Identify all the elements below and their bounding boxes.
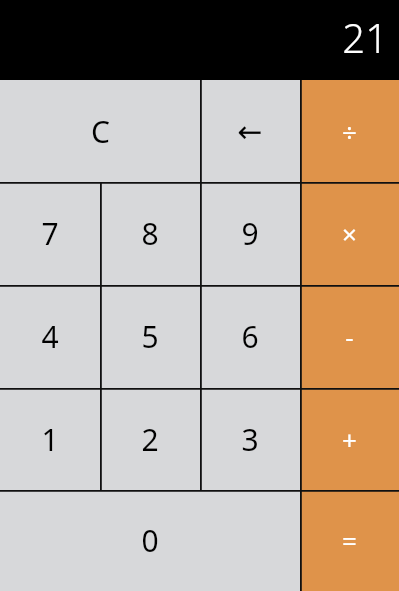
button[interactable]: 6 (200, 285, 300, 388)
button[interactable]: 2 (100, 388, 200, 490)
button[interactable]: 3 (200, 388, 300, 490)
staticText: = (342, 523, 357, 558)
staticText: ÷ (342, 114, 357, 149)
staticText: 9 (241, 213, 259, 254)
staticText: 6 (241, 316, 259, 357)
staticText: 0 (141, 520, 159, 561)
staticText: C (91, 111, 110, 152)
staticText: 2 (141, 419, 159, 460)
staticText: 8 (141, 213, 159, 254)
button[interactable]: 9 (200, 182, 300, 285)
button[interactable]: Minus (300, 285, 399, 388)
button[interactable]: Equals (300, 490, 399, 591)
staticText: 5 (141, 316, 159, 357)
staticText: 21 (342, 10, 388, 64)
button[interactable]: Divide (300, 80, 399, 182)
staticText: ← (237, 114, 263, 149)
staticText: - (345, 319, 354, 354)
button[interactable]: 4 (0, 285, 100, 388)
button[interactable]: Plus (300, 388, 399, 490)
staticText: 4 (41, 316, 59, 357)
staticText: 1 (41, 419, 59, 460)
staticText: × (342, 216, 357, 251)
button[interactable]: 0 (0, 490, 300, 591)
button[interactable]: 7 (0, 182, 100, 285)
button[interactable]: Multiply (300, 182, 399, 285)
button[interactable]: C (0, 80, 200, 182)
staticText: + (342, 422, 357, 457)
button[interactable]: 5 (100, 285, 200, 388)
staticText: 7 (41, 213, 59, 254)
button[interactable]: Backspace (200, 80, 300, 182)
staticText: 3 (241, 419, 259, 460)
button[interactable]: 8 (100, 182, 200, 285)
button[interactable]: 1 (0, 388, 100, 490)
